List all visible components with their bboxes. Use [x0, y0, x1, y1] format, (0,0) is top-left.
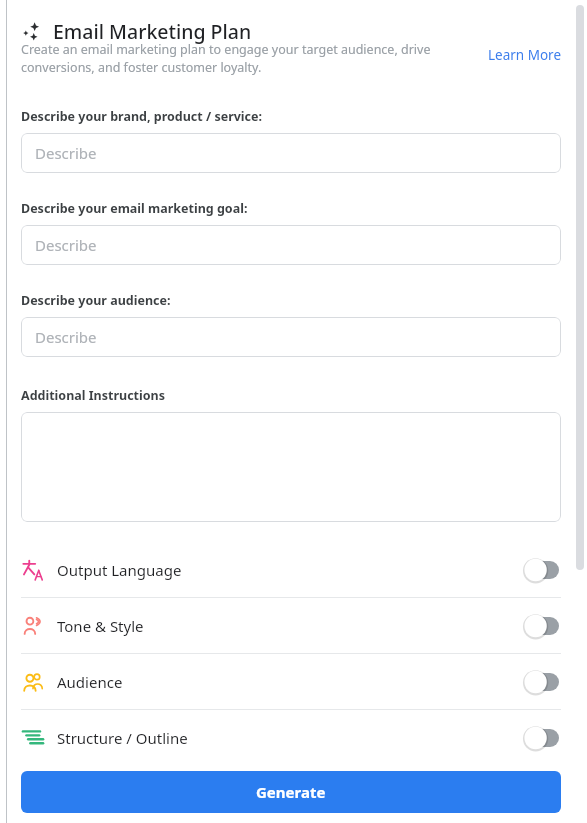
staticText: Output Language [57, 560, 182, 580]
staticText: Describe your brand, product / service: [21, 108, 263, 125]
button[interactable]: Audience [21, 654, 561, 709]
staticText: Create an email marketing plan to engage… [21, 41, 481, 76]
staticText: Describe [35, 327, 97, 347]
staticText: Audience [57, 672, 123, 692]
button[interactable]: Describe [21, 133, 561, 173]
staticText: Describe your email marketing goal: [21, 200, 248, 217]
button[interactable]: Describe [21, 225, 561, 265]
staticText: Tone & Style [57, 616, 144, 636]
staticText: Describe [35, 143, 97, 163]
staticText: Describe your audience: [21, 292, 171, 309]
button[interactable]: Output Language [21, 542, 561, 597]
staticText: Email Marketing Plan [53, 18, 252, 45]
staticText: Structure / Outline [57, 728, 188, 748]
staticText: Learn More [488, 46, 562, 64]
staticText: Describe [35, 235, 97, 255]
button[interactable]: Structure / Outline [21, 710, 561, 765]
button[interactable]: Generate [21, 771, 561, 813]
button[interactable]: Tone & Style [21, 598, 561, 653]
staticText: Additional Instructions [21, 387, 165, 404]
button[interactable]: Learn More [487, 44, 563, 66]
button[interactable]: Describe [21, 317, 561, 357]
staticText: Generate [256, 782, 326, 802]
button[interactable] [21, 412, 561, 522]
